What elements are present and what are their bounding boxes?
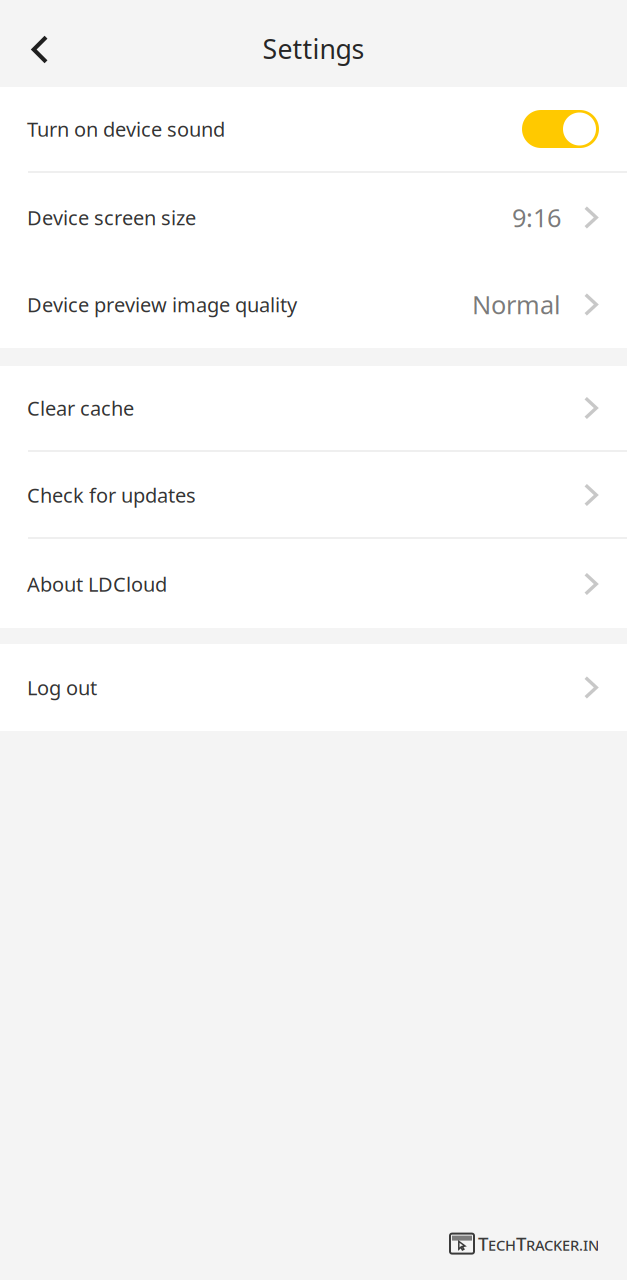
button[interactable]: About LDCloud <box>0 540 627 628</box>
staticText: Turn on device sound <box>27 116 225 142</box>
staticText: Device preview image quality <box>27 291 297 318</box>
button[interactable]: Back <box>0 0 80 87</box>
button[interactable]: Check for updates <box>0 453 627 537</box>
staticText: Log out <box>27 674 97 701</box>
staticText: Check for updates <box>27 482 196 508</box>
staticText: TECHTRACKER.IN <box>478 1231 599 1256</box>
staticText: Clear cache <box>27 395 134 421</box>
staticText: Settings <box>262 31 364 66</box>
staticText: Normal <box>472 288 561 321</box>
staticText: Device screen size <box>27 204 196 231</box>
button[interactable]: Clear cache <box>0 366 627 450</box>
button[interactable]: Device screen size <box>0 174 627 261</box>
button[interactable]: Log out <box>0 644 627 731</box>
staticText: 9:16 <box>512 201 561 234</box>
staticText: About LDCloud <box>27 571 167 597</box>
button[interactable]: Device preview image quality <box>0 261 627 348</box>
button[interactable]: Turn on device sound <box>0 87 627 171</box>
